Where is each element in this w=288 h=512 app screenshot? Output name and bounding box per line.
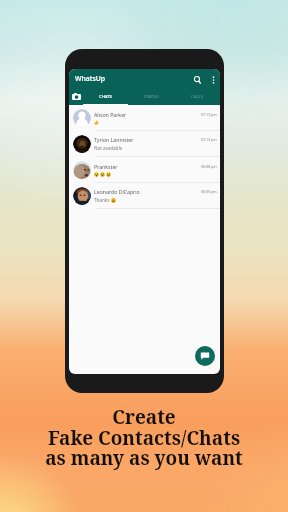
staticText: 06:08 pm — [201, 164, 217, 169]
staticText: Not available — [94, 145, 123, 151]
staticText: WhatsUp — [75, 74, 106, 83]
staticText: Create Fake Contacts/Chats as many as yo… — [0, 404, 288, 470]
button[interactable]: Tyrion Lannister — [69, 131, 220, 156]
button[interactable]: More options — [206, 73, 220, 87]
staticText: Thanks — [94, 197, 111, 203]
staticText: Alison Parker — [94, 111, 201, 118]
staticText: STATUS — [144, 94, 159, 100]
staticText: Prankster — [94, 163, 201, 170]
staticText: CALLS — [191, 94, 204, 100]
staticText: 07:13 pm — [201, 137, 217, 142]
staticText: 06:06 pm — [201, 189, 217, 194]
button[interactable]: Search — [190, 73, 204, 87]
button[interactable]: Camera — [69, 88, 83, 105]
button[interactable]: Alison Parker — [69, 105, 220, 130]
staticText: CHATS — [99, 94, 112, 100]
button[interactable]: Prankster — [69, 157, 220, 182]
button[interactable]: STATUS — [128, 88, 174, 105]
button[interactable]: Leonardo DiCaprio — [69, 183, 220, 208]
button[interactable]: CHATS — [83, 88, 128, 105]
button[interactable]: New chat — [195, 346, 215, 366]
staticText: 07:13 pm — [201, 112, 217, 117]
staticText: Tyrion Lannister — [94, 136, 201, 143]
button[interactable]: CALLS — [174, 88, 220, 105]
staticText: Leonardo DiCaprio — [94, 188, 201, 195]
